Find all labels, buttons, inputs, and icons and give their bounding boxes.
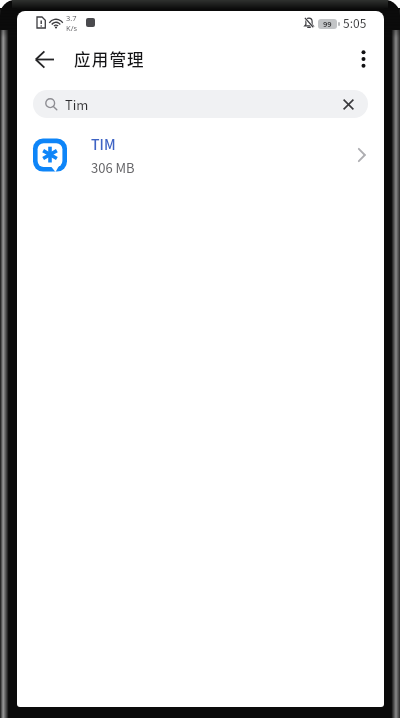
staticText: TIM <box>91 134 116 154</box>
staticText: Tim <box>65 95 89 114</box>
staticText: 3.7 <box>66 13 77 23</box>
staticText: K/s <box>66 23 78 33</box>
staticText: 5:05 <box>343 14 367 31</box>
button[interactable]: Tim <box>33 90 368 118</box>
button[interactable] <box>328 90 368 118</box>
button[interactable] <box>350 44 376 74</box>
button[interactable] <box>26 44 64 74</box>
button[interactable]: TIM <box>17 128 384 182</box>
staticText: 应用管理 <box>74 47 145 71</box>
staticText: 306 MB <box>91 158 135 177</box>
staticText: 99 <box>323 19 332 29</box>
